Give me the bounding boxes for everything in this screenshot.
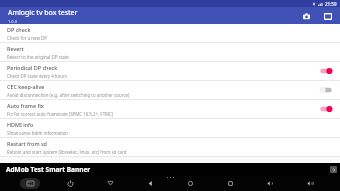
button[interactable] xyxy=(318,85,334,95)
button[interactable]: HDMI info xyxy=(0,119,340,138)
staticText: 1.0.0 xyxy=(8,19,18,24)
staticText: Avoid disconnection (e.g. after switchin… xyxy=(7,92,130,98)
button[interactable]: Periodical DP check xyxy=(0,62,340,81)
button[interactable]: Open ad xyxy=(330,166,337,173)
button[interactable]: AdMob Test Smart Banner xyxy=(0,163,340,176)
button[interactable]: Expand xyxy=(100,178,120,189)
button[interactable]: Restart from sd xyxy=(0,138,340,157)
staticText: AdMob Test Smart Banner xyxy=(6,165,91,174)
button[interactable] xyxy=(318,104,334,114)
staticText: Amlogic tv box tester xyxy=(8,8,78,18)
button[interactable]: Recents xyxy=(220,178,240,189)
staticText: Fix for correct auto framerate (SPMC 16.… xyxy=(7,111,114,117)
staticText: 21:59 xyxy=(325,1,337,7)
button[interactable]: CEC keep-alive xyxy=(0,81,340,100)
staticText: Check DP state every 4 hours xyxy=(7,73,67,79)
button[interactable]: Screenshot xyxy=(300,10,312,22)
staticText: Show some hdmi information xyxy=(7,130,69,136)
staticText: HDMI info xyxy=(7,121,34,128)
staticText: Reboot and start system (libreelec, linu… xyxy=(7,149,127,155)
button[interactable]: DP check xyxy=(0,24,340,43)
staticText: Restart from sd xyxy=(7,140,47,147)
button[interactable] xyxy=(318,66,334,76)
button[interactable]: Device info xyxy=(322,10,334,22)
staticText: Revert to the original DP state xyxy=(7,54,69,60)
button[interactable]: Back xyxy=(140,178,160,189)
staticText: Revert xyxy=(7,45,24,52)
staticText: CEC keep-alive xyxy=(7,83,45,90)
button[interactable]: Volume up xyxy=(300,178,320,189)
button[interactable]: Home xyxy=(180,178,200,189)
staticText: Auto frame fix xyxy=(7,102,44,109)
button[interactable]: Auto frame fix xyxy=(0,100,340,119)
staticText: DP check xyxy=(7,26,31,33)
button[interactable]: Volume down xyxy=(260,178,280,189)
button[interactable]: Power xyxy=(60,178,80,189)
staticText: Check for a new DP xyxy=(7,35,47,41)
button[interactable]: Keyboard xyxy=(20,178,40,189)
staticText: Periodical DP check xyxy=(7,64,58,71)
button[interactable]: Revert xyxy=(0,43,340,62)
